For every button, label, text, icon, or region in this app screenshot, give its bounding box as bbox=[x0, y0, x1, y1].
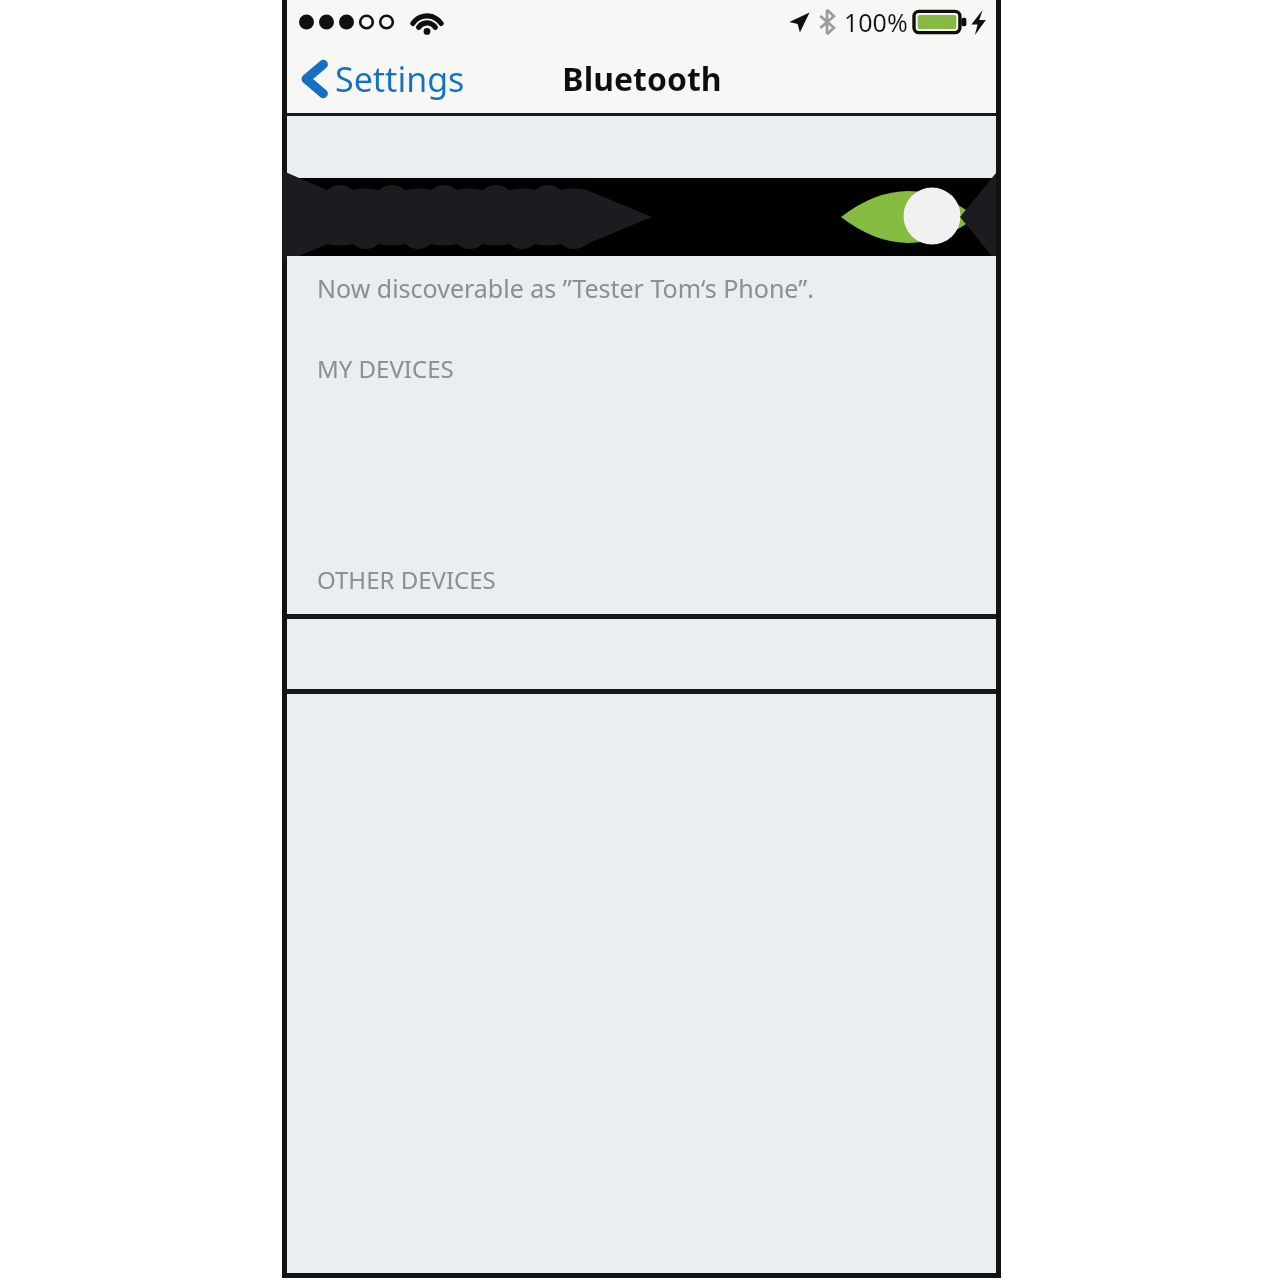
button[interactable]: Bluetooth toggle, on bbox=[287, 178, 996, 256]
staticText: Now discoverable as ”Tester Tom‘s Phone”… bbox=[317, 271, 814, 305]
staticText: Bluetooth bbox=[562, 57, 722, 101]
button[interactable]: Settings bbox=[301, 56, 465, 102]
staticText: OTHER DEVICES bbox=[317, 563, 496, 596]
staticText: Settings bbox=[335, 56, 465, 102]
staticText: 100% bbox=[844, 5, 908, 39]
staticText: MY DEVICES bbox=[317, 352, 454, 385]
